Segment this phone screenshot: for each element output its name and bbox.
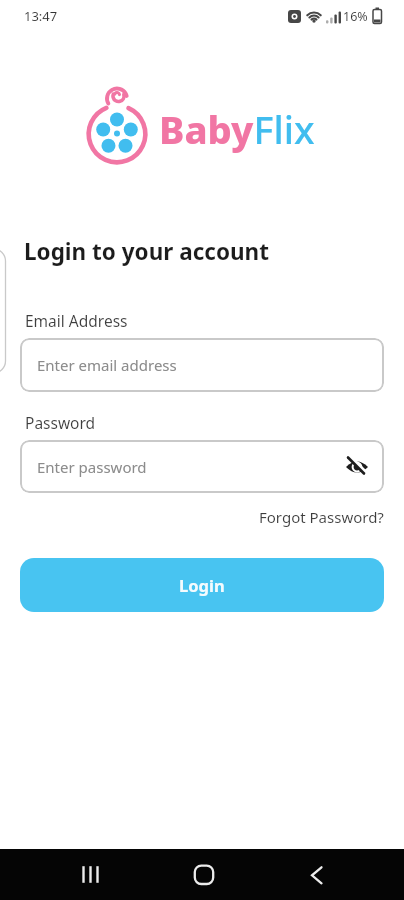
staticText: Email Address: [25, 310, 128, 331]
button[interactable]: [344, 454, 370, 480]
staticText: Login: [179, 574, 225, 596]
button[interactable]: [73, 856, 108, 893]
button[interactable]: Enter password: [20, 440, 384, 493]
button[interactable]: Login: [20, 558, 384, 612]
staticText: Forgot Password?: [259, 507, 384, 527]
button[interactable]: Forgot Password?: [255, 503, 388, 531]
staticText: Login to your account: [24, 236, 269, 267]
staticText: BabyFlix: [159, 103, 315, 155]
staticText: 13:47: [24, 7, 58, 25]
staticText: Password: [25, 412, 96, 433]
button[interactable]: [187, 856, 222, 893]
button[interactable]: Enter email address: [20, 338, 384, 392]
staticText: Enter password: [37, 457, 147, 477]
staticText: 16%: [343, 8, 368, 25]
button[interactable]: [299, 856, 334, 893]
staticText: Enter email address: [37, 355, 177, 375]
